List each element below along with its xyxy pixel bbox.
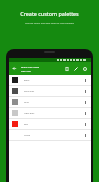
button[interactable]: White <box>9 130 91 140</box>
staticText: Gray <box>24 101 29 104</box>
button[interactable]: Back <box>9 62 19 75</box>
staticText: Choose colors and save them in your pale… <box>25 22 74 25</box>
button[interactable]: Black <box>9 75 91 85</box>
staticText: Black and White <box>21 65 39 68</box>
staticText: Create custom palettes <box>20 10 79 17</box>
button[interactable]: Edit <box>71 62 80 75</box>
staticText: Red <box>24 123 28 126</box>
button[interactable]: Light gray <box>9 108 91 118</box>
staticText: Dark gray <box>24 90 35 93</box>
button[interactable]: Save <box>62 62 71 75</box>
button[interactable]: Red <box>9 119 91 129</box>
staticText: Light gray <box>24 112 35 115</box>
staticText: Black <box>24 79 30 82</box>
button[interactable]: Settings <box>80 62 89 75</box>
staticText: White <box>24 134 30 137</box>
staticText: with Red <box>21 69 31 72</box>
button[interactable]: Dark gray <box>9 86 91 96</box>
button[interactable]: Gray <box>9 97 91 107</box>
